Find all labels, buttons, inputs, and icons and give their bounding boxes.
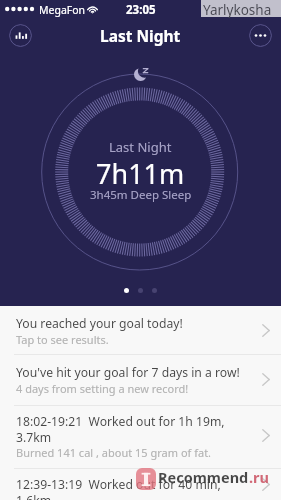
staticText: 23:05 <box>126 2 156 18</box>
button[interactable]: 12:39-13:19 Worked out for 40 min, 1.6km <box>0 469 281 500</box>
staticText: 12:39-13:19 Worked out for 40 min, 1.6km <box>16 476 221 500</box>
staticText: Yarlykosha <box>203 1 272 18</box>
staticText: You've hit your goal for 7 days in a row… <box>16 364 240 381</box>
button[interactable]: More options <box>249 24 272 47</box>
staticText: 7h11m <box>96 155 185 192</box>
staticText: Last Night <box>100 25 181 46</box>
staticText: You reached your goal today! <box>16 315 183 332</box>
staticText: Tap to see results. <box>16 332 109 347</box>
staticText: 4 days from setting a new record! <box>16 381 189 396</box>
button[interactable]: You've hit your goal for 7 days in a row… <box>0 355 281 405</box>
staticText: Burned 141 cal , about 15 gram of fat. <box>16 445 212 460</box>
staticText: 3h45m Deep Sleep <box>90 187 192 203</box>
button[interactable]: You reached your goal today! <box>0 306 281 354</box>
button[interactable]: Statistics <box>9 24 32 47</box>
staticText: 18:02-19:21 Worked out for 1h 19m, 3.7km <box>16 413 225 445</box>
staticText: MegaFon <box>39 3 86 17</box>
staticText: Last Night <box>109 138 172 156</box>
staticText: Recommend <box>158 467 249 487</box>
button[interactable]: 18:02-19:21 Worked out for 1h 19m, 3.7km <box>0 406 281 468</box>
staticText: .ru <box>249 467 269 487</box>
